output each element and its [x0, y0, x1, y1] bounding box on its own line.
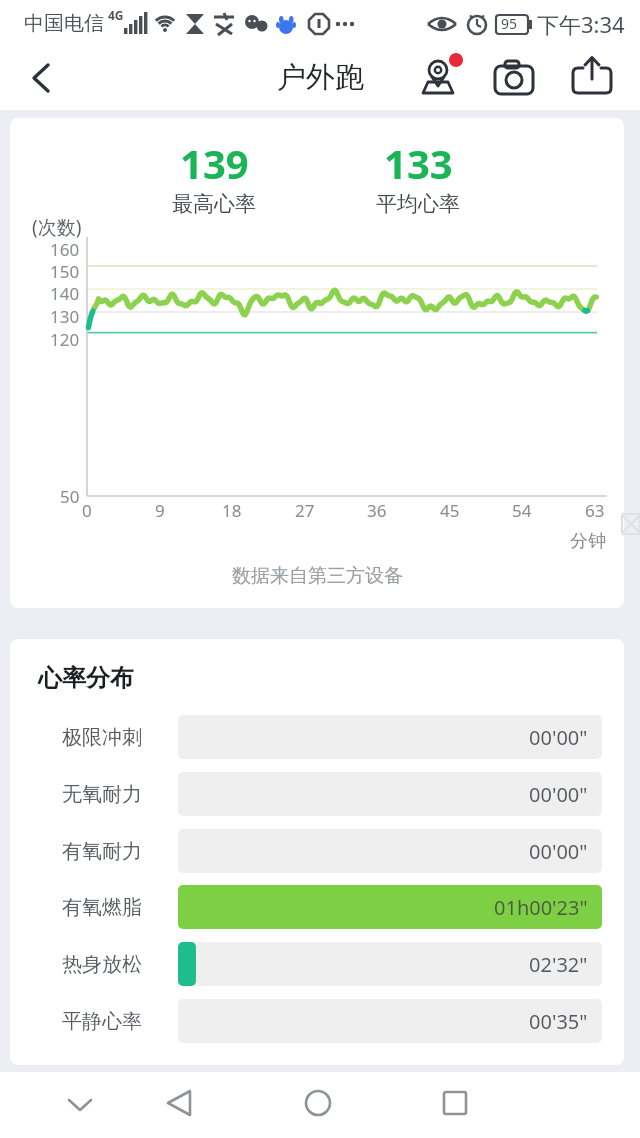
staticText: 00'00"	[529, 781, 588, 808]
staticText: 150	[50, 260, 80, 282]
button[interactable]	[298, 1083, 338, 1123]
staticText: 中国电信	[24, 11, 104, 36]
button[interactable]: 00'00"	[178, 715, 602, 759]
button[interactable]: 00'00"	[178, 772, 602, 816]
button[interactable]	[570, 55, 614, 99]
staticText: 63	[585, 499, 605, 521]
staticText: 最高心率	[172, 191, 256, 217]
staticText: 心率分布	[38, 663, 134, 693]
staticText: 01h00'23"	[494, 894, 588, 921]
button[interactable]	[22, 59, 62, 99]
staticText: 133	[384, 136, 453, 190]
staticText: 0	[82, 499, 92, 521]
staticText: 54	[512, 499, 532, 521]
button[interactable]	[160, 1083, 200, 1123]
staticText: 140	[50, 282, 80, 304]
button[interactable]: 00'00"	[178, 829, 602, 873]
staticText: 120	[50, 328, 80, 350]
button[interactable]: 02'32"	[178, 942, 602, 986]
staticText: 18	[222, 499, 242, 521]
staticText: 热身放松	[62, 952, 142, 977]
staticText: 平静心率	[62, 1009, 142, 1034]
staticText: 4G	[108, 7, 124, 23]
staticText: 02'32"	[529, 951, 588, 978]
staticText: (次数)	[32, 214, 82, 240]
staticText: 平均心率	[376, 191, 460, 217]
button[interactable]	[435, 1083, 475, 1123]
staticText: 无氧耐力	[62, 782, 142, 807]
staticText: 有氧耐力	[62, 839, 142, 864]
staticText: 数据来自第三方设备	[232, 564, 403, 588]
button[interactable]	[60, 1085, 100, 1125]
button[interactable]	[415, 55, 461, 101]
button[interactable]	[492, 57, 536, 101]
staticText: 45	[440, 499, 460, 521]
staticText: 00'35"	[529, 1008, 588, 1035]
staticText: 00'00"	[529, 838, 588, 865]
button[interactable]: 00'35"	[178, 999, 602, 1043]
staticText: 有氧燃脂	[62, 895, 142, 920]
staticText: 9	[155, 499, 165, 521]
staticText: 分钟	[570, 530, 606, 553]
staticText: 00'00"	[529, 724, 588, 751]
button[interactable]: 01h00'23"	[178, 885, 602, 929]
staticText: 下午3:34	[537, 9, 625, 39]
staticText: 27	[295, 499, 315, 521]
staticText: 130	[50, 305, 80, 327]
staticText: 95	[501, 14, 518, 33]
staticText: 139	[180, 136, 249, 190]
staticText: 50	[60, 485, 80, 507]
staticText: 极限冲刺	[62, 725, 142, 750]
staticText: 户外跑	[277, 59, 364, 96]
staticText: 160	[50, 238, 80, 260]
staticText: 36	[367, 499, 387, 521]
